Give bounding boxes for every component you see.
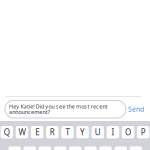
staticText: O <box>125 127 131 137</box>
button[interactable]: A <box>8 146 21 150</box>
button[interactable]: Y <box>76 126 89 138</box>
button[interactable]: K <box>114 146 127 150</box>
button[interactable]: P <box>137 126 149 138</box>
button[interactable]: J <box>99 146 112 150</box>
button[interactable]: Q <box>1 126 13 138</box>
staticText: Y <box>80 127 85 137</box>
staticText: T <box>65 127 69 137</box>
staticText: E <box>35 127 39 137</box>
button[interactable]: U <box>91 126 104 138</box>
button[interactable]: F <box>54 146 66 150</box>
button[interactable]: Hey Katie! Did you see the most recent <box>5 100 126 118</box>
staticText: announcement? <box>9 108 50 115</box>
button[interactable]: T <box>61 126 74 138</box>
staticText: P <box>141 127 146 137</box>
button[interactable]: W <box>16 126 28 138</box>
staticText: Q <box>4 127 10 137</box>
button[interactable]: R <box>46 126 58 138</box>
staticText: Hey Katie! Did you see the most recent <box>9 103 107 110</box>
staticText: Send <box>128 105 144 114</box>
staticText: R <box>50 127 55 137</box>
button[interactable]: G <box>69 146 81 150</box>
button[interactable]: Send <box>125 100 147 118</box>
staticText: W <box>18 127 25 137</box>
button[interactable]: O <box>122 126 134 138</box>
button[interactable]: E <box>31 126 43 138</box>
button[interactable]: H <box>84 146 97 150</box>
button[interactable]: I <box>107 126 119 138</box>
button[interactable]: L <box>130 146 142 150</box>
button[interactable]: D <box>39 146 51 150</box>
button[interactable]: S <box>24 146 36 150</box>
staticText: U <box>95 127 101 137</box>
staticText: I <box>111 127 114 137</box>
